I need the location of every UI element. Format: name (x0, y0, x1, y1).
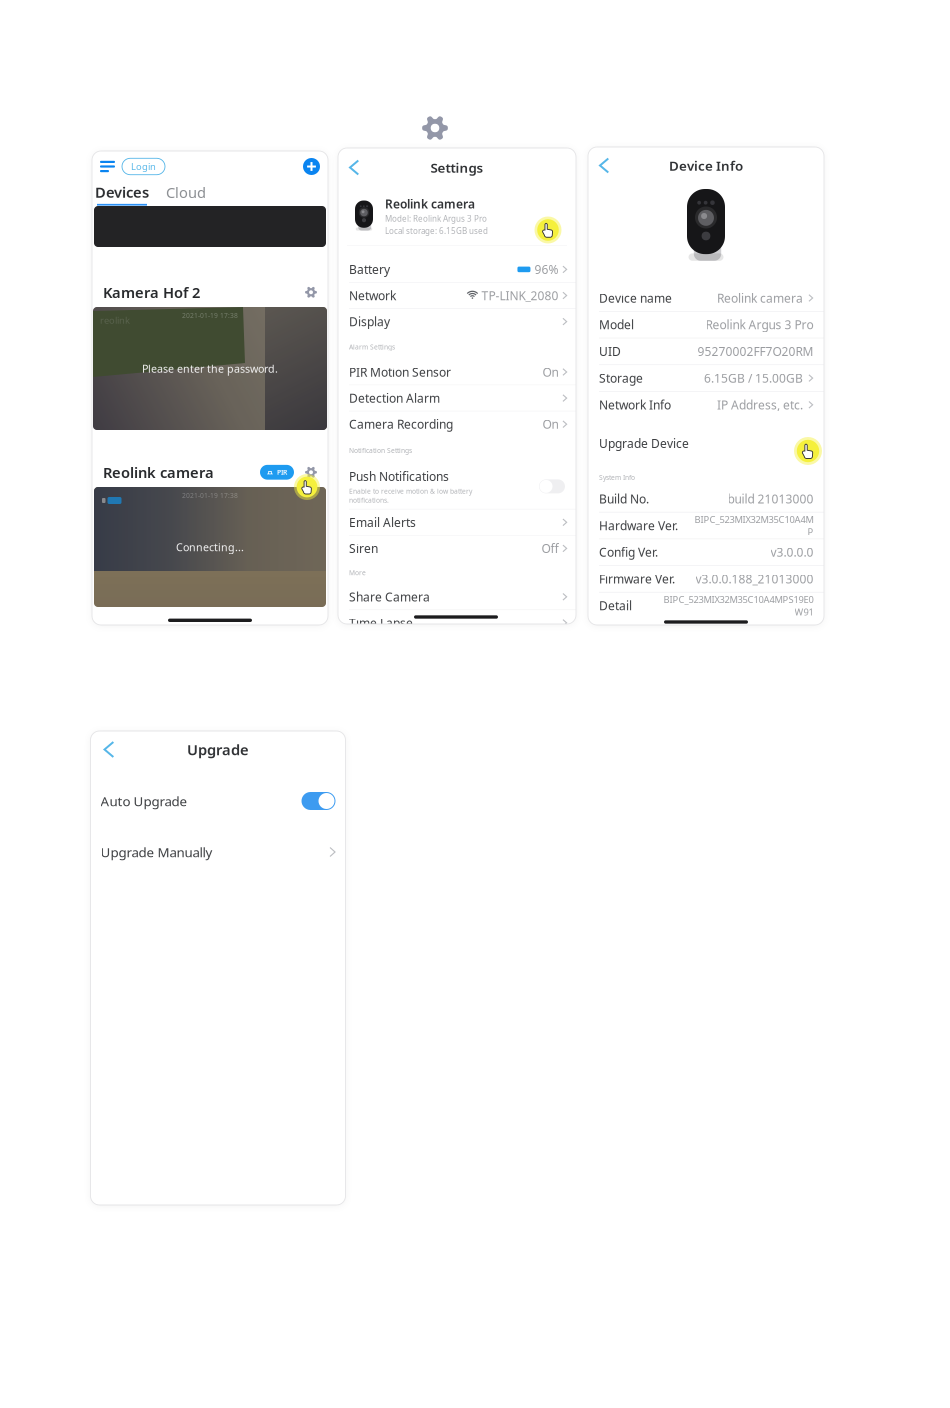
staticText: Hardware Ver. (599, 517, 678, 533)
staticText: System Info (599, 473, 635, 482)
staticText: Device Info (669, 157, 743, 174)
button[interactable]: Build No. (588, 486, 824, 512)
button[interactable]: PIR Motion Sensor (338, 359, 576, 385)
staticText: reolink (100, 314, 130, 326)
button[interactable]: Upgrade Device (588, 418, 824, 469)
staticText: Model: Reolink Argus 3 Pro (385, 213, 487, 224)
staticText: Display (349, 314, 390, 329)
staticText: 2021-01-19 17:38 (182, 491, 238, 500)
button[interactable]: Config Ver. (588, 539, 824, 565)
button[interactable]: Login (122, 158, 165, 175)
button[interactable]: Siren (338, 536, 576, 561)
staticText: Detection Alarm (349, 390, 440, 406)
staticText: Reolink camera (716, 290, 802, 306)
staticText: Email Alerts (349, 514, 416, 530)
staticText: Enable to receive motion & low battery n… (349, 487, 472, 504)
button[interactable]: Storage (588, 365, 824, 391)
button[interactable]: Network (338, 283, 576, 308)
button[interactable]: Upgrade Manually (90, 834, 345, 870)
staticText: BIPC_523MIX32M35C10A4M P (694, 513, 813, 538)
button[interactable]: Cloud (149, 182, 206, 206)
button[interactable]: Battery (338, 257, 576, 282)
staticText: v3.0.0.0 (770, 544, 813, 560)
staticText: build 21013000 (727, 491, 813, 507)
button[interactable]: UID (588, 338, 824, 364)
staticText: Upgrade (187, 740, 249, 759)
staticText: Upgrade Manually (100, 843, 212, 861)
button[interactable]: Menu (100, 155, 122, 177)
staticText: Upgrade Device (599, 435, 689, 451)
button[interactable]: Email Alerts (338, 510, 576, 535)
button[interactable]: Camera Recording (338, 411, 576, 437)
staticText: Siren (349, 540, 378, 556)
staticText: Storage (599, 370, 643, 386)
button[interactable]: Auto Upgrade toggle (301, 792, 335, 810)
button[interactable]: Camera settings (305, 286, 317, 298)
button[interactable]: Back (103, 741, 120, 758)
staticText: Network (349, 287, 396, 303)
staticText: On (542, 364, 558, 380)
staticText: 6.15GB / 15.00GB (703, 370, 802, 386)
staticText: Settings (430, 159, 483, 176)
button[interactable]: Back (599, 157, 615, 173)
staticText: More (349, 568, 366, 577)
button[interactable]: PIR (260, 465, 294, 480)
staticText: v3.0.0.188_21013000 (695, 571, 813, 587)
button[interactable]: Time Lapse (338, 610, 576, 636)
staticText: 96% (534, 261, 558, 277)
staticText: Firmware Ver. (599, 571, 675, 587)
staticText: Build No. (599, 491, 649, 507)
staticText: Network Info (599, 397, 671, 413)
button[interactable]: Detail (588, 593, 824, 619)
staticText: Notification Settings (349, 446, 412, 455)
staticText: Detail (599, 598, 632, 613)
button[interactable]: Model (588, 312, 824, 338)
staticText: Config Ver. (599, 544, 658, 560)
staticText: IP Address, etc. (716, 397, 802, 413)
button[interactable]: Detection Alarm (338, 385, 576, 411)
button[interactable]: Push Notifications toggle (539, 479, 565, 493)
button[interactable]: Hardware Ver. (588, 512, 824, 538)
staticText: Cloud (166, 182, 206, 202)
staticText: Time Lapse (349, 615, 413, 631)
staticText: 95270002FF7O20RM (697, 343, 813, 359)
button[interactable]: Camera settings (305, 466, 317, 478)
staticText: Devices (95, 182, 149, 202)
staticText: Reolink camera (103, 462, 214, 482)
staticText: Local storage: 6.15GB used (385, 225, 488, 236)
staticText: Login (131, 160, 156, 173)
button[interactable]: Share Camera (338, 584, 576, 609)
staticText: PIR Motion Sensor (349, 364, 451, 380)
staticText: Connecting... (176, 540, 244, 554)
button[interactable]: Network Info (588, 392, 824, 418)
staticText: Reolink camera (385, 196, 475, 212)
button[interactable]: Back (349, 159, 365, 175)
button[interactable]: Device name (588, 285, 824, 311)
button[interactable]: Firmware Ver. (588, 566, 824, 592)
staticText: On (542, 416, 558, 432)
staticText: BIPC_523MIX32M35C10A4MPS19E0 W91 (663, 593, 813, 618)
staticText: Kamera Hof 2 (103, 282, 200, 302)
staticText: Reolink Argus 3 Pro (705, 317, 813, 333)
button[interactable]: Display (338, 309, 576, 334)
staticText: Push Notifications (349, 468, 449, 484)
button[interactable]: Add device (303, 158, 320, 175)
staticText: TP-LINK_2080 (481, 287, 558, 303)
staticText: Camera Recording (349, 416, 453, 432)
staticText: PIR (277, 468, 287, 477)
button[interactable]: Reolink camera (338, 187, 576, 245)
staticText: Alarm Settings (349, 342, 395, 351)
staticText: Battery (349, 261, 390, 277)
staticText: Device name (599, 290, 672, 306)
staticText: Model (599, 317, 634, 333)
staticText: Please enter the password. (142, 361, 278, 376)
staticText: Share Camera (349, 589, 430, 605)
staticText: 2021-01-19 17:38 (182, 311, 238, 320)
button[interactable]: Devices (95, 182, 149, 206)
staticText: Off (541, 540, 558, 556)
staticText: UID (599, 343, 621, 359)
staticText: Auto Upgrade (100, 792, 187, 810)
